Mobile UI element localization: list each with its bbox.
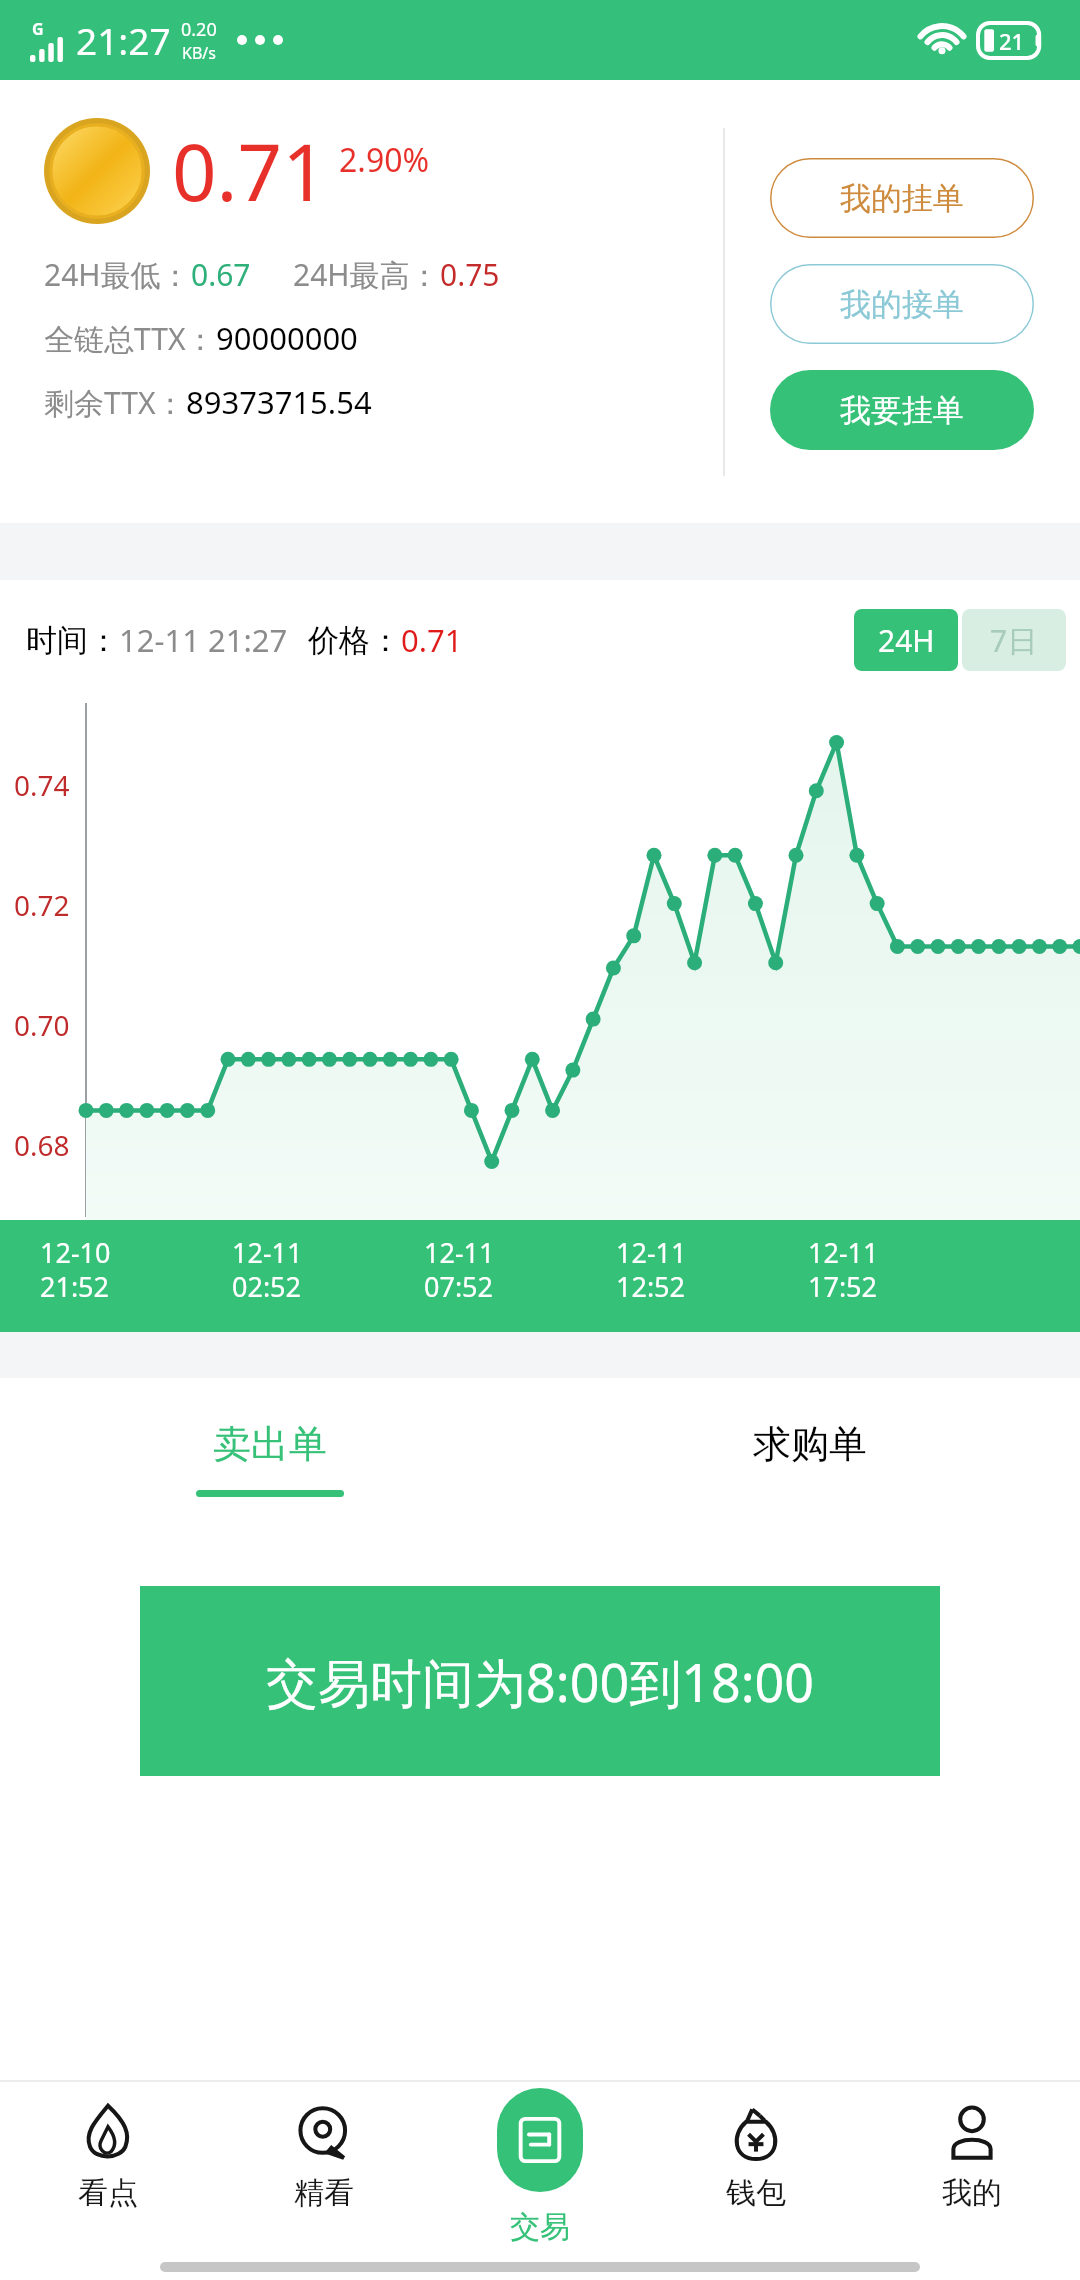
staticText: 24H最高：	[293, 254, 440, 295]
button[interactable]: 我的	[864, 2080, 1080, 2280]
staticText: 12-11 07:52	[424, 1234, 495, 1305]
staticText: 21	[999, 26, 1025, 56]
button[interactable]: 交易	[432, 2080, 648, 2280]
staticText: 12-11 21:27	[119, 619, 288, 661]
button[interactable]: 我的接单	[770, 264, 1034, 344]
staticText: 24H	[878, 620, 935, 661]
staticText: 看点	[78, 2174, 138, 2212]
staticText: 我的接单	[840, 285, 964, 324]
staticText: 0.68	[14, 1126, 70, 1164]
staticText: 剩余TTX：	[44, 382, 186, 423]
other: 交易	[497, 2088, 583, 2192]
staticText: 求购单	[753, 1420, 867, 1468]
staticText: 89373715.54	[186, 381, 372, 423]
staticText: 我的挂单	[840, 179, 964, 218]
staticText: 12-11 12:52	[616, 1234, 687, 1305]
other: 看点	[77, 2102, 139, 2164]
button[interactable]: 交易时间为8:00到18:00	[140, 1586, 940, 1776]
staticText: 交易	[510, 2208, 570, 2246]
staticText: G	[32, 18, 44, 40]
staticText: 钱包	[726, 2174, 786, 2212]
other: 精看	[293, 2102, 355, 2164]
button[interactable]: 24H	[854, 609, 958, 671]
staticText: 21:27	[76, 15, 171, 65]
staticText: 价格：	[308, 621, 401, 660]
staticText: 卖出单	[213, 1420, 327, 1468]
staticText: KB/s	[182, 42, 216, 64]
staticText: 12-11 02:52	[232, 1234, 303, 1305]
staticText: 0.67	[191, 254, 251, 295]
staticText: 0.75	[440, 254, 500, 295]
staticText: 精看	[294, 2174, 354, 2212]
button[interactable]: 我的挂单	[770, 158, 1034, 238]
staticText: 24H最低：	[44, 254, 191, 295]
other: 我的	[941, 2102, 1003, 2164]
staticText: 我的	[942, 2174, 1002, 2212]
staticText: 0.72	[14, 886, 70, 924]
staticText: 7日	[990, 620, 1038, 661]
staticText: 0.74	[14, 766, 70, 804]
staticText: 0.20	[181, 17, 217, 42]
staticText: 0.70	[14, 1006, 70, 1044]
button[interactable]: 7日	[962, 609, 1066, 671]
staticText: 我要挂单	[840, 391, 964, 430]
button[interactable]: 看点	[0, 2080, 216, 2280]
button[interactable]: 求购单	[540, 1378, 1080, 1538]
button[interactable]: 精看	[216, 2080, 432, 2280]
staticText: 90000000	[216, 317, 358, 359]
staticText: 12-10 21:52	[40, 1234, 111, 1305]
button[interactable]: 钱包	[648, 2080, 864, 2280]
other: 钱包	[725, 2102, 787, 2164]
button[interactable]: 我要挂单	[770, 370, 1034, 450]
staticText: 时间：	[26, 621, 119, 660]
button[interactable]: 卖出单	[0, 1378, 540, 1538]
staticText: 全链总TTX：	[44, 318, 216, 359]
staticText: 交易时间为8:00到18:00	[266, 1646, 815, 1717]
staticText: 0.71	[172, 118, 327, 224]
staticText: 0.71	[401, 619, 463, 661]
staticText: 12-11 17:52	[808, 1234, 879, 1305]
staticText: 2.90%	[339, 138, 430, 182]
